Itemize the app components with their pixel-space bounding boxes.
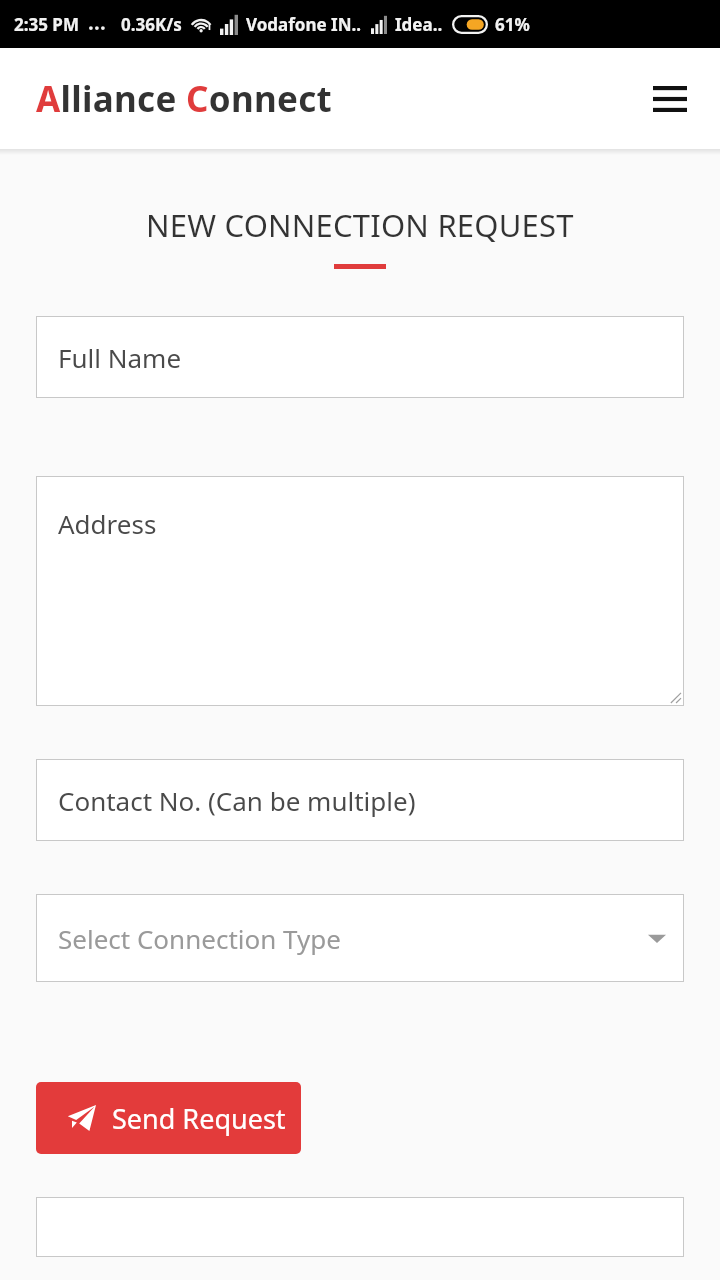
staticText: Vodafone IN.. — [246, 13, 362, 36]
staticText: Contact No. (Can be multiple) — [58, 783, 416, 818]
button[interactable]: Address — [36, 476, 684, 706]
button[interactable]: Alliance Connect — [36, 75, 333, 123]
staticText: Alliance Connect — [36, 75, 333, 123]
staticText: 0.36K/s — [121, 13, 182, 36]
staticText: 61% — [495, 13, 530, 36]
button[interactable]: Select Connection Type — [36, 894, 684, 982]
button[interactable]: Open menu — [646, 75, 694, 123]
staticText: NEW CONNECTION REQUEST — [146, 204, 574, 246]
staticText: 2:35 PM — [14, 13, 79, 36]
button[interactable]: Send Request — [36, 1082, 301, 1154]
button[interactable]: Full Name — [36, 316, 684, 398]
staticText: Select Connection Type — [58, 921, 341, 956]
staticText: Send Request — [112, 1100, 286, 1137]
staticText: Address — [58, 506, 157, 541]
staticText: Full Name — [58, 340, 182, 375]
button[interactable]: Contact No. (Can be multiple) — [36, 759, 684, 841]
button[interactable] — [36, 1197, 684, 1257]
staticText: Idea.. — [395, 13, 443, 36]
